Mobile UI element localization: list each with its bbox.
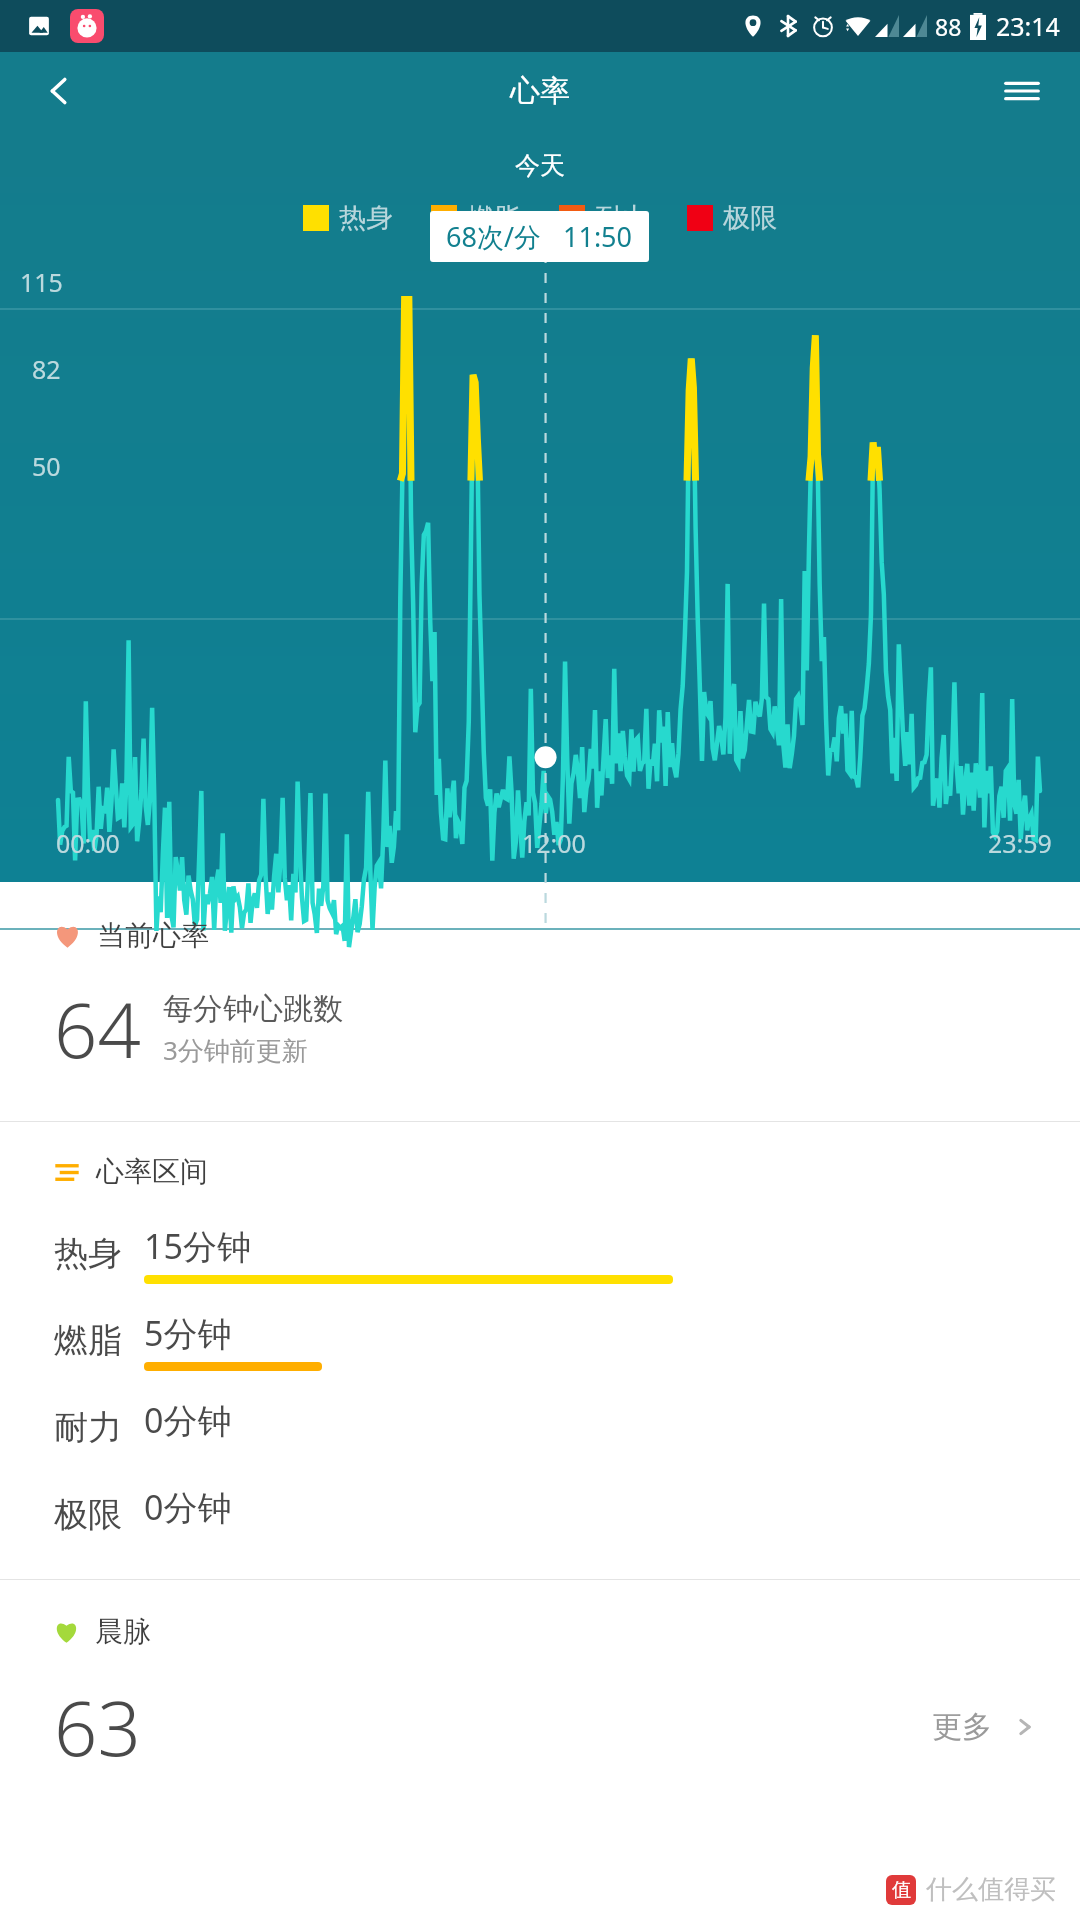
staticText: 当前心率 — [97, 918, 209, 953]
staticText: 0分钟 — [144, 1484, 232, 1530]
button[interactable]: 极限 — [687, 201, 777, 235]
staticText: 115 — [20, 265, 63, 299]
staticText: 今天 — [0, 150, 1080, 181]
staticText: 68次/分 — [446, 218, 541, 255]
staticText: 50 — [32, 449, 61, 483]
button[interactable]: 极限 — [54, 1484, 1080, 1545]
staticText: 15分钟 — [144, 1223, 251, 1269]
staticText: 00:00 — [56, 826, 120, 860]
staticText: 燃脂 — [54, 1319, 122, 1362]
button[interactable]: 耐力 — [54, 1397, 1080, 1458]
staticText: 燃脂 — [467, 201, 521, 235]
staticText: 什么值得买 — [926, 1873, 1056, 1906]
staticText: 更多 — [932, 1708, 992, 1746]
staticText: 极限 — [54, 1493, 122, 1536]
staticText: 11:50 — [563, 218, 633, 255]
staticText: 每分钟心跳数 — [163, 990, 343, 1028]
button[interactable]: Back — [36, 67, 84, 115]
button[interactable]: 燃脂 — [431, 201, 521, 235]
staticText: 心率 — [510, 72, 570, 110]
staticText: 热身 — [339, 201, 393, 235]
staticText: 晨脉 — [95, 1614, 151, 1649]
staticText: 23:59 — [988, 826, 1052, 860]
staticText: 64 — [54, 977, 141, 1081]
staticText: 12:00 — [522, 826, 586, 860]
button[interactable]: Menu — [998, 67, 1046, 115]
staticText: 值 — [892, 1878, 911, 1902]
staticText: 5分钟 — [144, 1310, 232, 1356]
staticText: 极限 — [723, 201, 777, 235]
button[interactable]: 热身 — [303, 201, 393, 235]
staticText: 耐力 — [54, 1406, 122, 1449]
button[interactable]: 更多 — [932, 1708, 1040, 1746]
staticText: 心率区间 — [96, 1154, 208, 1189]
staticText: 63 — [54, 1675, 141, 1779]
staticText: 0分钟 — [144, 1397, 232, 1443]
button[interactable]: 耐力 — [559, 201, 649, 235]
staticText: 88 — [935, 11, 962, 42]
staticText: 3分钟前更新 — [163, 1032, 308, 1068]
staticText: 82 — [32, 352, 61, 386]
staticText: 耐力 — [595, 201, 649, 235]
button[interactable]: 热身 — [54, 1223, 1080, 1284]
button[interactable]: 燃脂 — [54, 1310, 1080, 1371]
staticText: 热身 — [54, 1232, 122, 1275]
staticText: 23:14 — [996, 9, 1060, 43]
